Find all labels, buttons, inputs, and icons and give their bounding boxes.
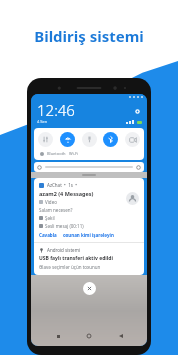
button[interactable]: Sound xyxy=(38,132,53,147)
staticText: Video xyxy=(45,199,57,205)
staticText: Android sistemi xyxy=(47,247,81,253)
button[interactable]: Cavabla xyxy=(39,232,57,238)
staticText: Salam necesen? xyxy=(39,207,73,213)
button[interactable]: Back xyxy=(116,331,126,341)
staticText: USB faylı transferi aktiv edildi xyxy=(39,255,113,262)
staticText: 4 Sen xyxy=(37,119,48,124)
staticText: Wi-Fi xyxy=(69,151,79,156)
button[interactable]: Home xyxy=(84,331,94,341)
button[interactable]: Settings xyxy=(132,106,142,116)
staticText: Əlavə seçimlər üçün toxunun xyxy=(39,264,101,270)
staticText: Bluetooth xyxy=(47,151,66,156)
button[interactable]: Wi-Fi xyxy=(60,132,75,147)
button[interactable]: Recents xyxy=(53,331,63,341)
button[interactable]: AzChat • 1s • xyxy=(34,178,144,242)
button[interactable]: Flashlight xyxy=(82,132,97,147)
staticText: AzChat • 1s • xyxy=(47,182,77,188)
staticText: Səsli mesaj (00:11) xyxy=(45,223,84,229)
staticText: 12:46 xyxy=(37,100,75,120)
staticText: azam2 (4 Messages) xyxy=(39,190,94,197)
button[interactable] xyxy=(34,162,144,172)
button[interactable]: Close xyxy=(83,282,96,295)
button[interactable]: Screenshot xyxy=(125,132,140,147)
staticText: Bildiriş sistemi xyxy=(34,26,144,46)
button[interactable]: oxunan kimi işarələyin xyxy=(63,232,114,238)
button[interactable]: Bluetooth xyxy=(103,132,118,147)
button[interactable]: Android sistemi xyxy=(34,243,144,275)
staticText: Şəkil xyxy=(45,215,55,221)
